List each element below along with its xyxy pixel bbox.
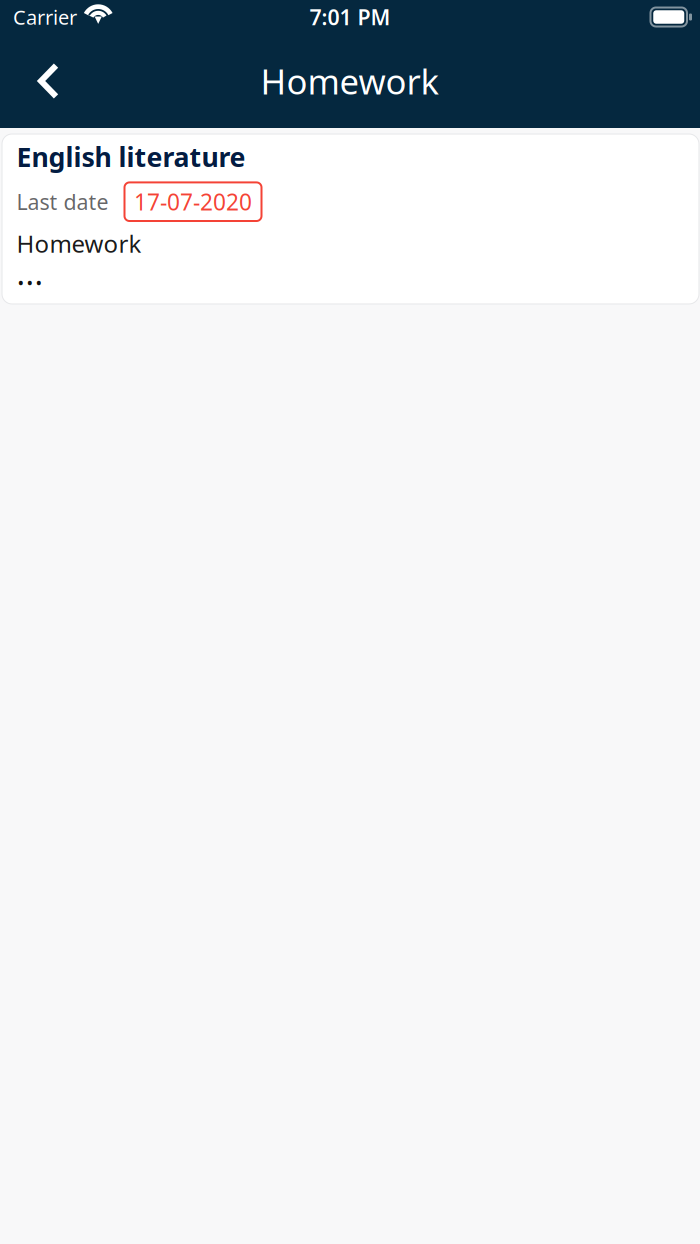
button[interactable]: English literature [2,134,699,304]
staticText: Last date [16,187,108,216]
staticText: Homework [260,58,439,104]
staticText: Homework [16,228,141,259]
staticText: Carrier [13,4,77,30]
button[interactable]: Back [38,50,112,112]
staticText: 7:01 PM [309,3,390,31]
staticText: English literature [16,139,245,174]
staticText: ... [16,251,43,294]
staticText: 17-07-2020 [134,187,252,217]
